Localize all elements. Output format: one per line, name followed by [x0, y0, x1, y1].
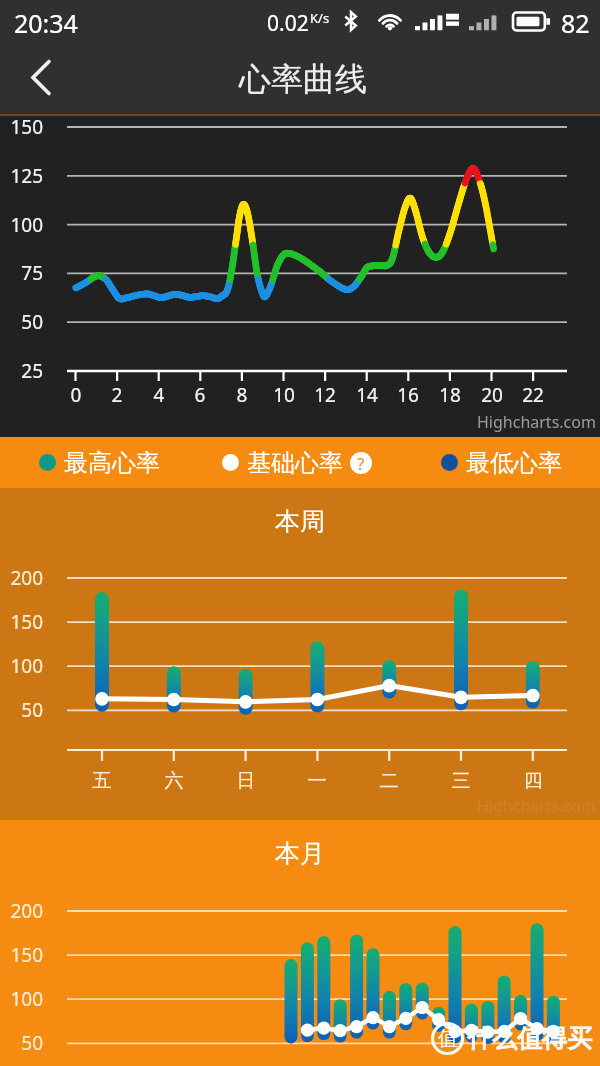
staticText: 三 — [441, 769, 481, 793]
button[interactable]: 基础心率 — [222, 437, 384, 488]
staticText: 25 — [0, 358, 43, 384]
staticText: 150 — [0, 114, 43, 140]
staticText: 20 — [472, 382, 512, 408]
staticText: ? — [357, 452, 365, 474]
staticText: 2 — [97, 382, 137, 408]
staticText: 一 — [297, 769, 337, 793]
staticText: 0.02 — [267, 9, 309, 38]
staticText: 50 — [0, 697, 43, 723]
staticText: 日 — [226, 769, 266, 793]
staticText: 100 — [0, 986, 43, 1012]
staticText: 五 — [82, 769, 122, 793]
staticText: Highcharts.com — [477, 795, 596, 817]
staticText: 22 — [513, 382, 553, 408]
staticText: 200 — [0, 565, 43, 591]
staticText: 100 — [0, 653, 43, 679]
staticText: 4 — [139, 382, 179, 408]
staticText: 50 — [0, 1030, 43, 1056]
staticText: 75 — [0, 260, 43, 286]
staticText: 14 — [347, 382, 387, 408]
staticText: 最低心率 — [466, 448, 562, 478]
staticText: 10 — [264, 382, 304, 408]
staticText: 心率曲线 — [239, 59, 367, 99]
staticText: 150 — [0, 609, 43, 635]
button[interactable]: 最高心率 — [39, 437, 179, 488]
staticText: 值 — [438, 1026, 458, 1051]
staticText: 什么值得买 — [467, 1023, 592, 1054]
staticText: 8 — [222, 382, 262, 408]
staticText: 六 — [154, 769, 194, 793]
staticText: 本月 — [275, 838, 325, 869]
staticText: 50 — [0, 309, 43, 335]
staticText: 二 — [369, 769, 409, 793]
staticText: 0 — [56, 382, 96, 408]
staticText: 20:34 — [14, 6, 78, 40]
staticText: 200 — [0, 898, 43, 924]
staticText: 82 — [561, 6, 590, 40]
staticText: 基础心率 — [247, 448, 343, 478]
staticText: 100 — [0, 212, 43, 238]
staticText: Highcharts.com — [477, 411, 596, 433]
button[interactable]: 最低心率 — [441, 437, 581, 488]
staticText: 16 — [388, 382, 428, 408]
staticText: 本周 — [275, 506, 325, 537]
staticText: 125 — [0, 163, 43, 189]
button[interactable]: Back — [0, 43, 76, 116]
staticText: 最高心率 — [64, 448, 160, 478]
staticText: 12 — [305, 382, 345, 408]
staticText: 6 — [180, 382, 220, 408]
staticText: 四 — [513, 769, 553, 793]
staticText: 150 — [0, 942, 43, 968]
staticText: 18 — [430, 382, 470, 408]
staticText: K/s — [310, 9, 330, 27]
